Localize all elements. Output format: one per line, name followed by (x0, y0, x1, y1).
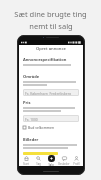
button[interactable] (23, 152, 58, 155)
staticText: Start (23, 162, 29, 166)
button[interactable]: Search (32, 155, 44, 166)
staticText: Profil (73, 162, 80, 166)
button[interactable]: Sell (45, 155, 57, 166)
button[interactable]: Opret annonce (19, 45, 83, 53)
button[interactable]: Profile (70, 155, 82, 166)
staticText: Annoncespecifikation (23, 57, 67, 62)
staticText: Billeder (23, 137, 39, 142)
button[interactable]: Fx. København, Frederiksberg (23, 89, 79, 96)
staticText: Søg (36, 162, 41, 166)
staticText: nemt til salg (29, 21, 73, 31)
button[interactable]: Fx. 1000 (23, 115, 79, 122)
staticText: Beskeder (58, 162, 70, 166)
staticText: Fx. 1000 (25, 117, 38, 121)
staticText: Pris (23, 100, 31, 105)
button[interactable]: Home (20, 155, 32, 166)
staticText: Område (23, 74, 40, 79)
staticText: Opret annonce (36, 46, 66, 52)
staticText: Fx. København, Frederiksberg (25, 91, 72, 95)
staticText: Salg (48, 163, 54, 166)
button[interactable]: Messages (58, 155, 70, 166)
staticText: Bud velkommen (28, 125, 54, 130)
button[interactable]: Bud velkommen (23, 125, 79, 130)
staticText: Sæt dine brugte ting (14, 9, 87, 19)
